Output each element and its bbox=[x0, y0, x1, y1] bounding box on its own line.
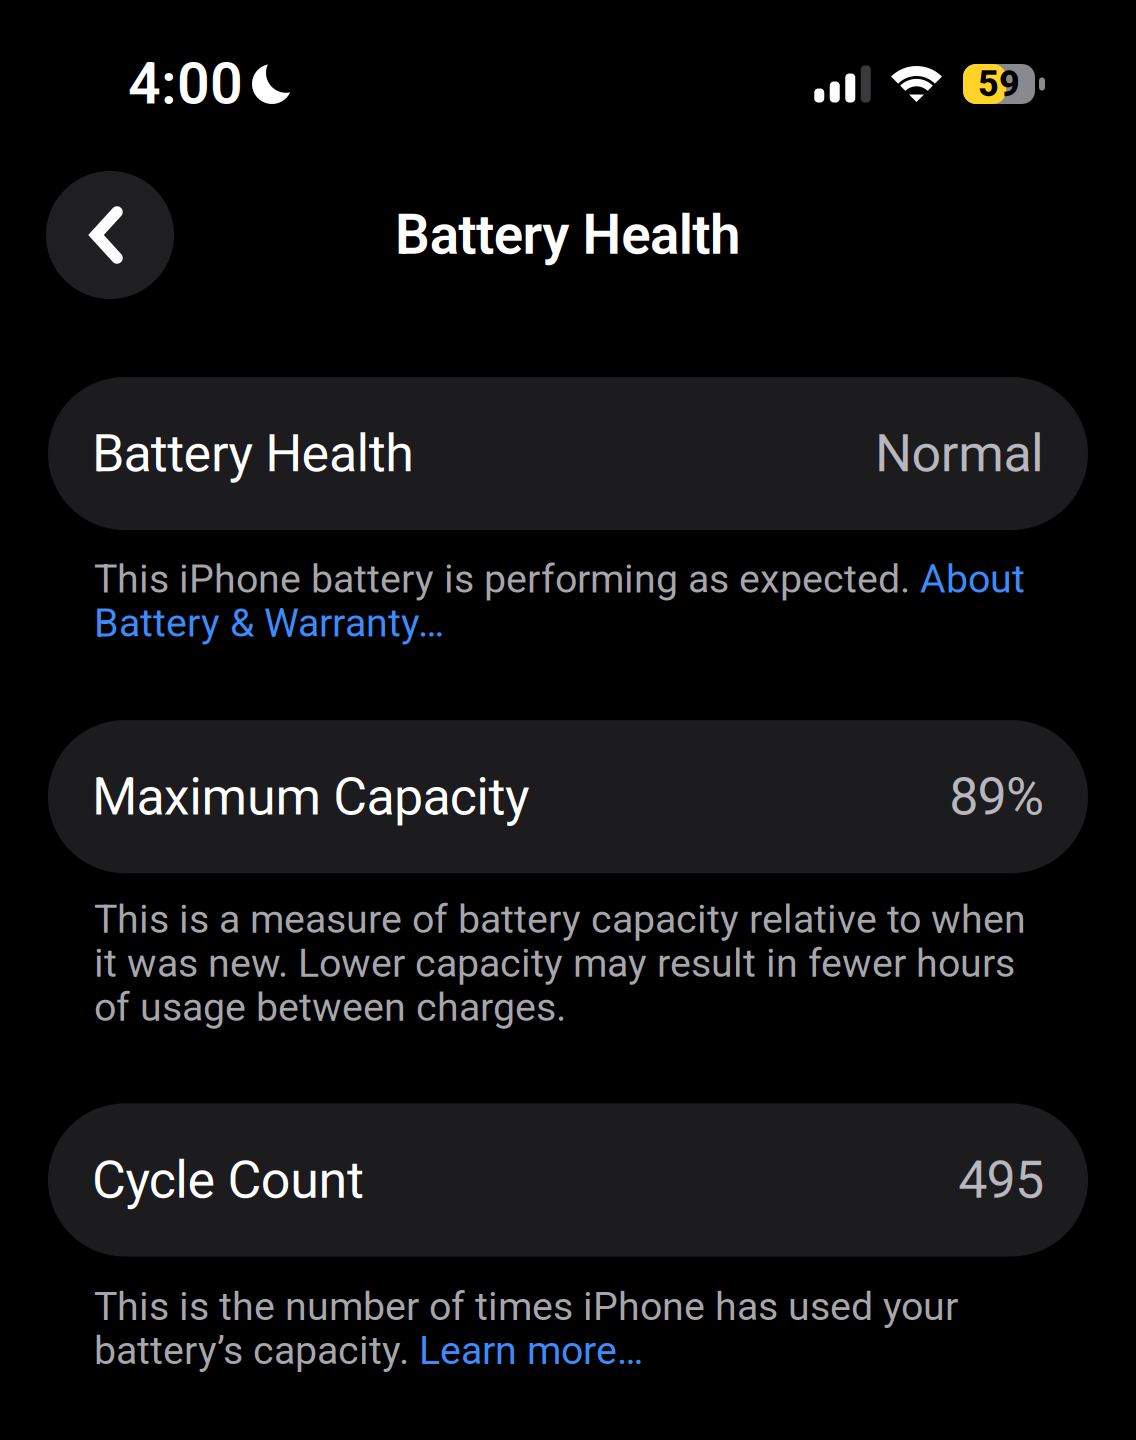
button[interactable]: Back bbox=[46, 171, 174, 299]
staticText: Cycle Count bbox=[92, 1149, 364, 1210]
staticText: 59 bbox=[978, 63, 1020, 105]
staticText: 89% bbox=[949, 766, 1044, 827]
button[interactable]: Maximum Capacity bbox=[48, 720, 1088, 873]
staticText: 4:00 bbox=[128, 50, 243, 118]
staticText: This is the number of times iPhone has u… bbox=[94, 1283, 958, 1374]
button[interactable]: About Battery & Warranty… bbox=[94, 556, 1042, 646]
staticText: Battery Health bbox=[92, 423, 414, 484]
button[interactable]: Battery Health bbox=[48, 377, 1088, 530]
staticText: Maximum Capacity bbox=[92, 766, 530, 827]
button[interactable]: Cycle Count bbox=[48, 1103, 1088, 1256]
staticText: 495 bbox=[958, 1149, 1044, 1210]
staticText: Normal bbox=[875, 423, 1044, 484]
staticText: This is a measure of battery capacity re… bbox=[94, 896, 1026, 1030]
button[interactable]: Learn more… bbox=[94, 1283, 1042, 1374]
staticText: This iPhone battery is performing as exp… bbox=[94, 556, 1025, 646]
staticText: Battery Health bbox=[395, 203, 741, 267]
